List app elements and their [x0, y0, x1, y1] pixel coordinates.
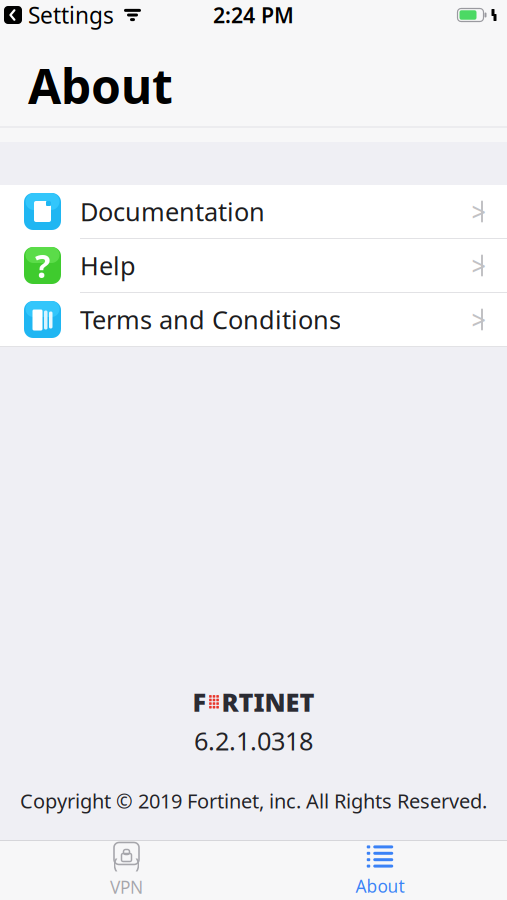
button[interactable]: Documentation [0, 185, 507, 239]
button[interactable]: Terms and Conditions [0, 293, 507, 347]
staticText: About [28, 54, 173, 117]
staticText: VPN [110, 875, 143, 898]
staticText: Settings [28, 0, 114, 30]
button[interactable]: ? [0, 239, 507, 293]
staticText: Documentation [80, 195, 265, 228]
staticText: Terms and Conditions [80, 303, 341, 336]
staticText: 6.2.1.0318 [194, 724, 313, 757]
staticText: 2:24 PM [213, 1, 294, 29]
button[interactable]: About [253, 841, 507, 899]
staticText: > [471, 303, 485, 336]
staticText: > [471, 195, 485, 228]
staticText: RTINET [221, 685, 314, 719]
staticText: ? [35, 244, 50, 287]
staticText: Help [80, 249, 136, 282]
staticText: F [193, 685, 207, 719]
staticText: > [471, 249, 485, 282]
button[interactable]: VPN [0, 841, 253, 899]
staticText: Copyright © 2019 Fortinet, inc. All Righ… [20, 787, 487, 814]
button[interactable]: Settings [4, 0, 114, 30]
staticText: About [355, 874, 404, 897]
